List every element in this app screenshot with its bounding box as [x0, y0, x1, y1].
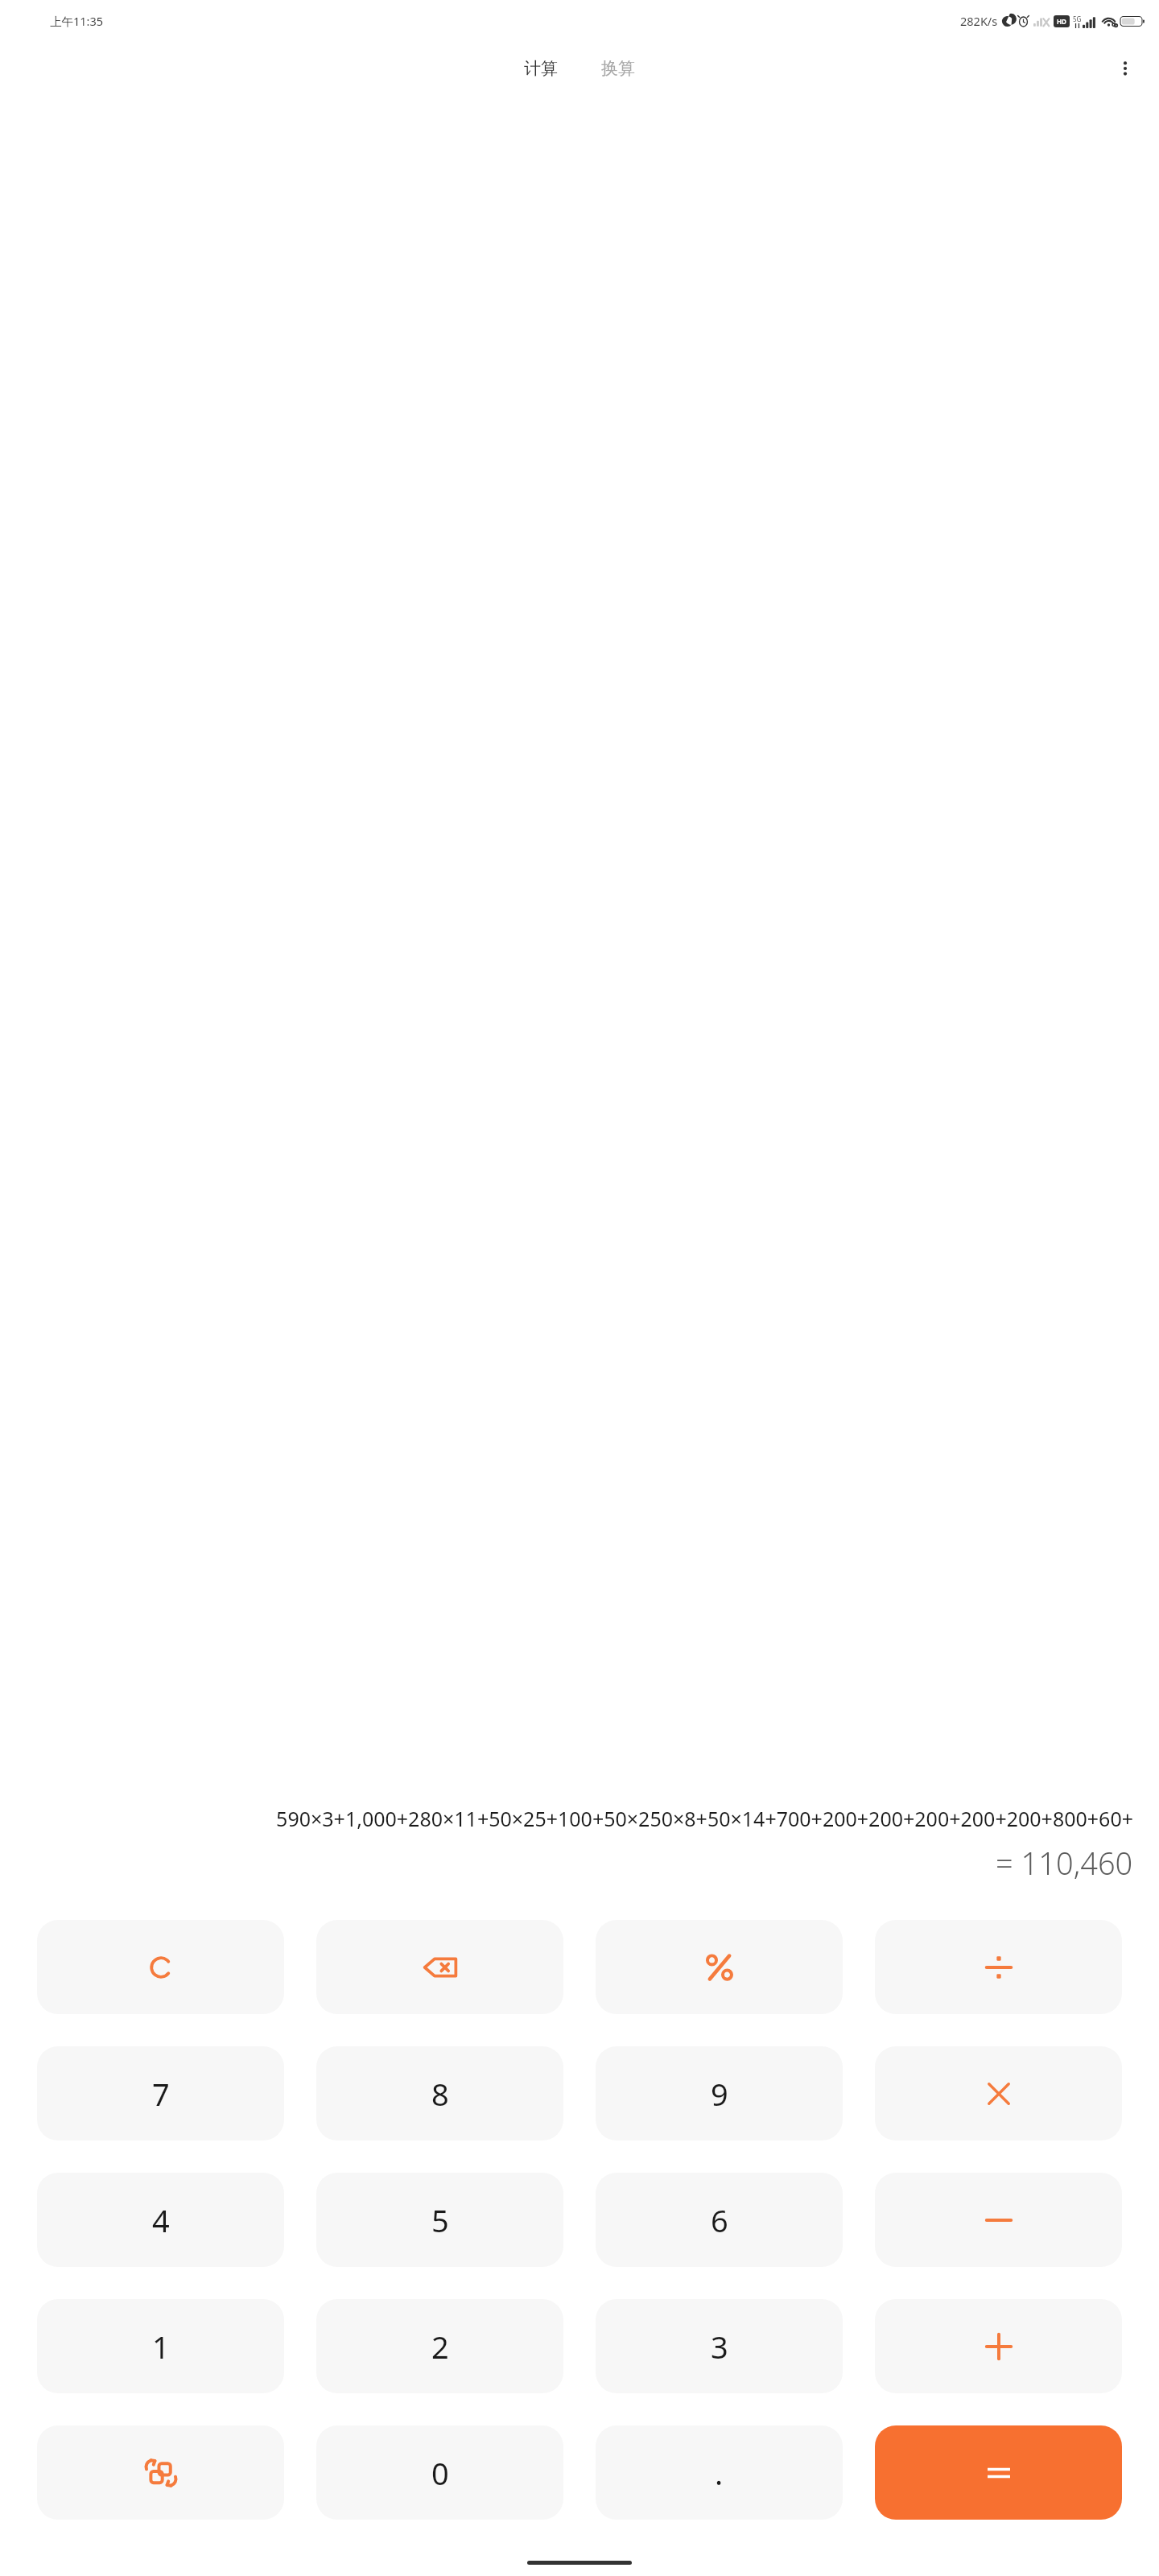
button[interactable]: .	[596, 2425, 843, 2520]
button[interactable]: 计算	[516, 53, 566, 84]
staticText: 7	[152, 2073, 170, 2115]
button[interactable]: More options	[1106, 49, 1145, 88]
button[interactable]: Equals	[875, 2425, 1122, 2520]
button[interactable]: 6	[596, 2173, 843, 2267]
button[interactable]: 3	[596, 2299, 843, 2393]
button[interactable]: 4	[37, 2173, 284, 2267]
button[interactable]: 0	[316, 2425, 563, 2520]
button[interactable]: Backspace	[316, 1920, 563, 2014]
staticText: 8	[431, 2073, 449, 2115]
button[interactable]: Plus	[875, 2299, 1122, 2393]
staticText: 1	[152, 2326, 170, 2368]
staticText: .	[715, 2452, 724, 2494]
staticText: = 110,460	[996, 1842, 1133, 1884]
button[interactable]: 7	[37, 2046, 284, 2140]
button[interactable]: 8	[316, 2046, 563, 2140]
staticText: 2	[431, 2326, 449, 2368]
staticText: HD	[1057, 17, 1066, 26]
staticText: 9	[711, 2073, 728, 2115]
staticText: 计算	[524, 58, 558, 79]
staticText: 换算	[601, 58, 635, 79]
staticText: 上午11:35	[50, 13, 104, 29]
button[interactable]: Multiply	[875, 2046, 1122, 2140]
button[interactable]: 2	[316, 2299, 563, 2393]
button[interactable]: 1	[37, 2299, 284, 2393]
button[interactable]: Percent	[596, 1920, 843, 2014]
button[interactable]: Minus	[875, 2173, 1122, 2267]
staticText: 0	[431, 2452, 449, 2494]
staticText: 3	[711, 2326, 728, 2368]
staticText: 5G	[1073, 14, 1082, 23]
staticText: 282K/s	[960, 13, 998, 29]
staticText: 6	[711, 2199, 728, 2241]
button[interactable]: 换算	[593, 53, 643, 84]
staticText: 5	[431, 2199, 449, 2241]
button[interactable]: Convert	[37, 2425, 284, 2520]
staticText: 590×3+1,000+280×11+50×25+100+50×250×8+50…	[276, 1805, 1133, 1832]
staticText: 4	[152, 2199, 170, 2241]
button[interactable]: 9	[596, 2046, 843, 2140]
button[interactable]: Divide	[875, 1920, 1122, 2014]
button[interactable]	[37, 1920, 284, 2014]
button[interactable]: 5	[316, 2173, 563, 2267]
